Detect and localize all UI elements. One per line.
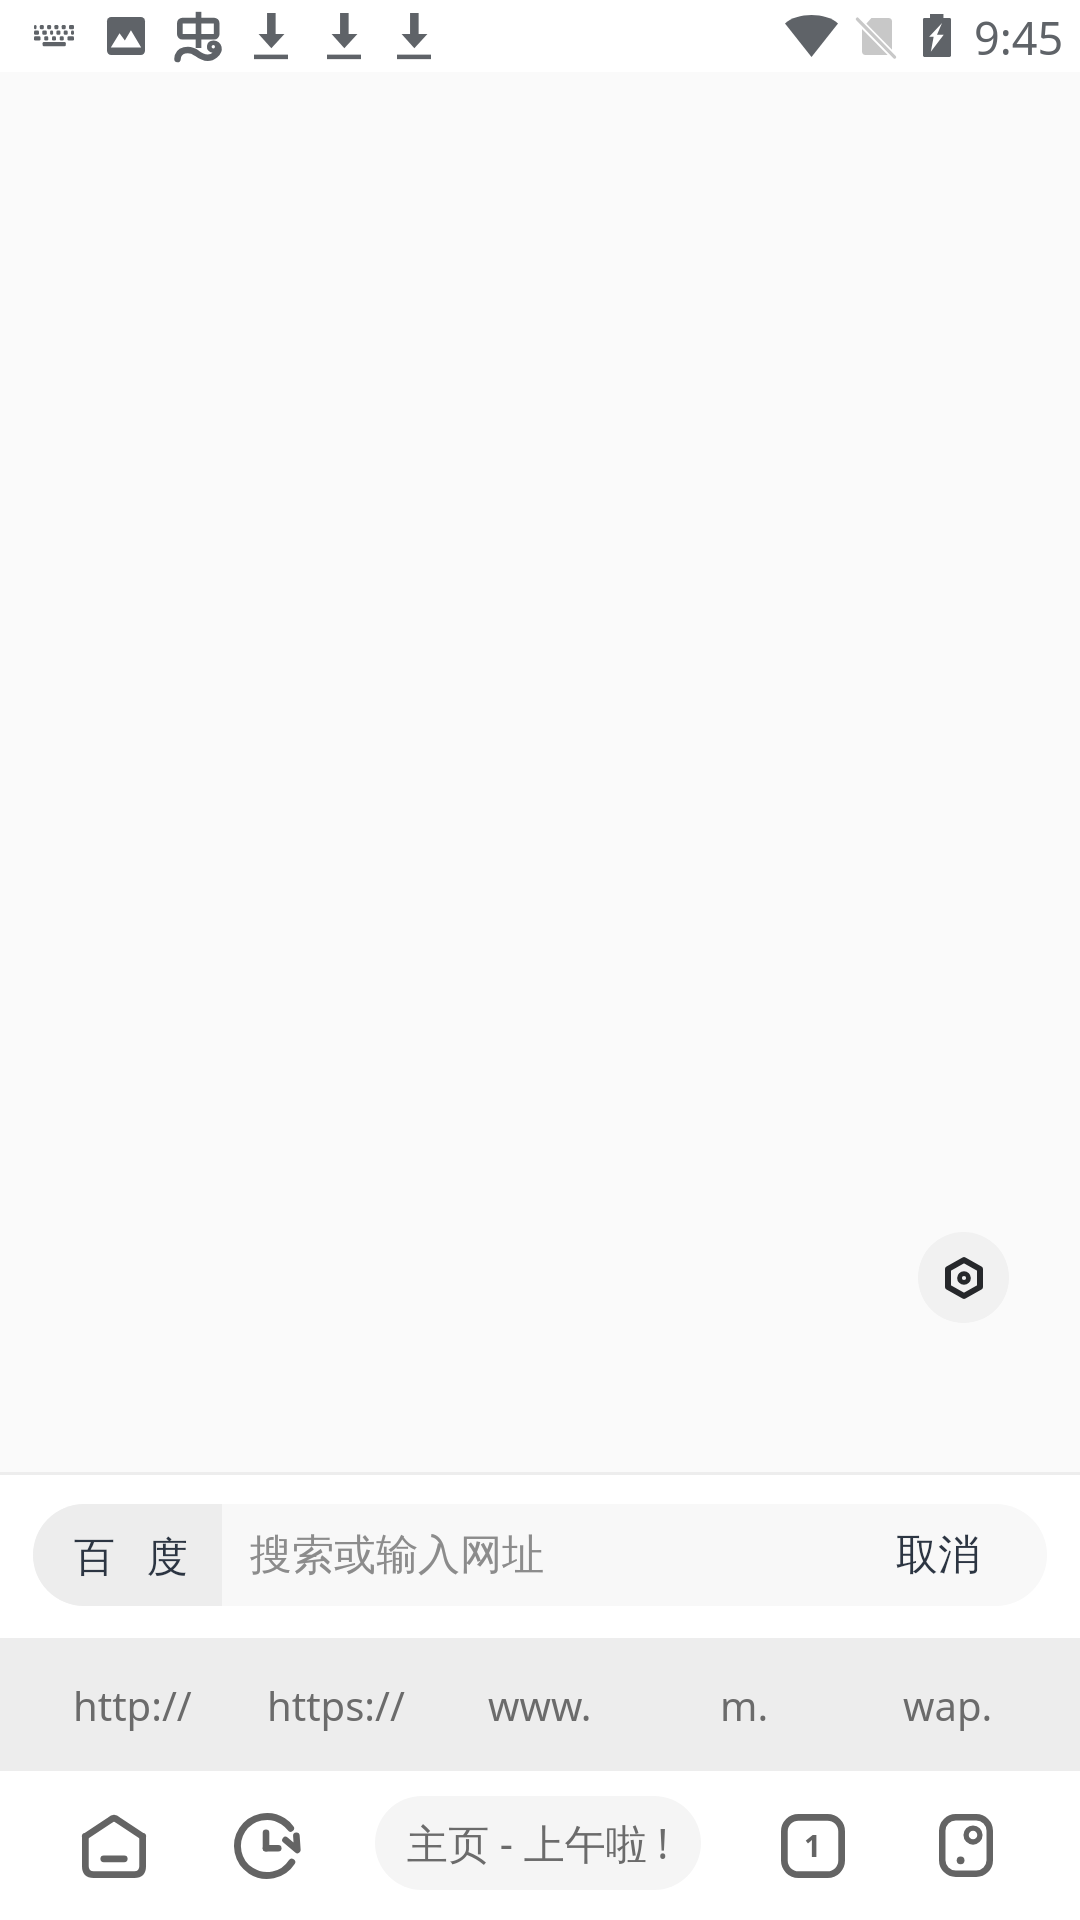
staticText: m. xyxy=(720,1678,769,1732)
staticText: www. xyxy=(488,1678,592,1732)
button[interactable]: https:// xyxy=(234,1638,438,1771)
button[interactable]: m. xyxy=(642,1638,846,1771)
staticText: 取消 xyxy=(896,1529,980,1582)
staticText: 搜索或输入网址 xyxy=(250,1529,544,1582)
button[interactable]: www. xyxy=(438,1638,642,1771)
staticText: http:// xyxy=(73,1678,192,1732)
button[interactable]: History xyxy=(234,1772,300,1919)
button[interactable]: Menu xyxy=(939,1772,993,1919)
staticText: 1 xyxy=(804,1825,822,1866)
button[interactable]: wap. xyxy=(846,1638,1050,1771)
staticText: 9:45 xyxy=(974,7,1064,68)
staticText: 百 度 xyxy=(74,1527,188,1583)
button[interactable]: 百 度 xyxy=(33,1504,1047,1606)
button[interactable]: Settings xyxy=(918,1232,1009,1323)
staticText: https:// xyxy=(267,1678,405,1732)
staticText: wap. xyxy=(903,1678,993,1732)
staticText: 主页 - 上午啦 ! xyxy=(407,1815,669,1871)
button[interactable]: http:// xyxy=(30,1638,234,1771)
button[interactable]: Tabs xyxy=(781,1772,845,1919)
button[interactable]: Home xyxy=(82,1772,146,1919)
button[interactable]: 主页 - 上午啦 ! xyxy=(375,1796,701,1890)
